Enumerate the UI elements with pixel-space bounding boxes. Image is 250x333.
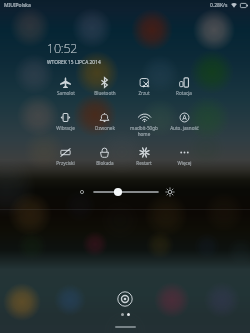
button[interactable]: Auto. jasność	[164, 107, 204, 142]
staticText: Samolot	[57, 90, 75, 96]
staticText: WTOREK 15 LIPCA 2014	[47, 59, 101, 66]
staticText: Auto. jasność	[170, 125, 199, 131]
staticText: 10:52	[47, 40, 78, 57]
staticText: MIUIPolska	[4, 2, 31, 9]
button[interactable]: Blokada	[85, 142, 124, 177]
button[interactable]: Więcej	[164, 142, 204, 177]
button[interactable]: Przyciski	[46, 142, 85, 177]
staticText: 0.28K/s	[210, 2, 228, 9]
staticText: Dzwonek	[95, 125, 115, 131]
staticText: Restart	[136, 160, 152, 166]
staticText: Więcej	[177, 160, 192, 166]
staticText: Przyciski	[56, 160, 75, 166]
button[interactable]: madbit-50gb home	[124, 107, 164, 142]
staticText: Bluetooth	[94, 90, 116, 96]
button[interactable]: Bluetooth	[85, 72, 124, 107]
button[interactable]: Rotacja	[164, 72, 204, 107]
button[interactable]: Samolot	[46, 72, 85, 107]
staticText: Wibracje	[56, 125, 75, 131]
staticText: Blokada	[96, 160, 114, 166]
button[interactable]: Restart	[124, 142, 164, 177]
staticText: Zrzut	[138, 90, 150, 96]
staticText: Rotacja	[176, 90, 192, 96]
button[interactable]: Zrzut	[124, 72, 164, 107]
staticText: madbit-50gb home	[130, 125, 158, 137]
button[interactable]: Settings	[117, 291, 133, 307]
button[interactable]: Dzwonek	[85, 107, 124, 142]
button[interactable]: Wibracje	[46, 107, 85, 142]
